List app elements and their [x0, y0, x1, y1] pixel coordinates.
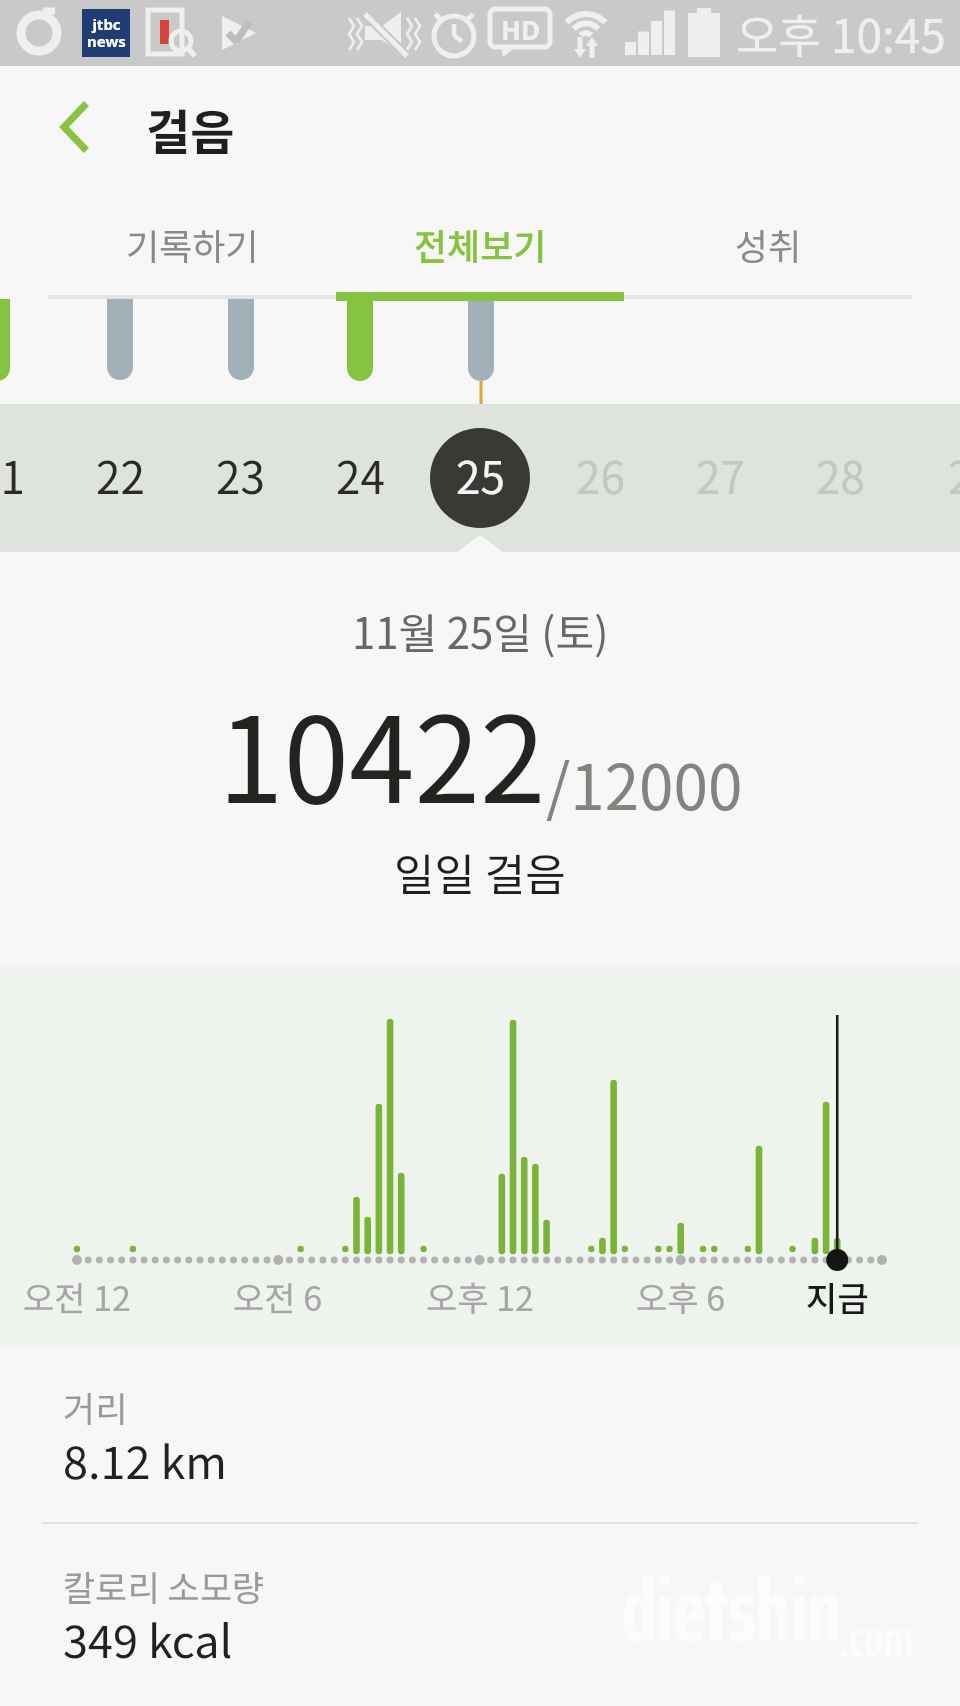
staticText: 오후 10:45	[736, 0, 946, 66]
staticText: 24	[336, 443, 385, 507]
staticText: 성취	[735, 218, 802, 270]
staticText: jtbc news	[87, 14, 126, 52]
staticText: HD	[501, 12, 540, 47]
button[interactable]: 2	[910, 428, 960, 528]
staticText: 21	[0, 443, 25, 507]
staticText: 11월 25일 (토)	[352, 600, 609, 661]
button[interactable]: 26	[550, 428, 650, 528]
staticText: 10422	[218, 666, 546, 837]
staticText: 28	[816, 443, 865, 507]
button[interactable]: 기록하기	[48, 188, 336, 298]
staticText: 지금	[806, 1272, 869, 1321]
button[interactable]: 칼로리 소모량	[0, 1524, 960, 1701]
staticText: 오전 12	[23, 1272, 131, 1321]
button[interactable]: 성취	[624, 188, 912, 298]
button[interactable]: 22	[70, 428, 170, 528]
button[interactable]: 21	[0, 428, 50, 528]
button[interactable]: 24	[310, 428, 410, 528]
staticText: /12000	[546, 738, 743, 828]
button[interactable]: 27	[670, 428, 770, 528]
staticText: 22	[96, 443, 145, 507]
staticText: 기록하기	[126, 218, 259, 270]
staticText: 일일 걸음	[394, 840, 566, 904]
button[interactable]: 25	[430, 428, 530, 528]
button[interactable]: 28	[790, 428, 890, 528]
staticText: 349 kcal	[63, 1606, 233, 1671]
staticText: 2	[948, 443, 960, 507]
staticText: 8.12 km	[63, 1427, 228, 1492]
button[interactable]: Back	[18, 73, 126, 181]
staticText: 26	[576, 443, 625, 507]
staticText: 25	[456, 443, 505, 507]
button[interactable]: 23	[190, 428, 290, 528]
staticText: 오전 6	[233, 1272, 323, 1321]
button[interactable]: 거리	[0, 1345, 960, 1522]
staticText: 거리	[63, 1381, 128, 1432]
staticText: 전체보기	[414, 218, 547, 270]
staticText: 걸음	[146, 94, 235, 164]
staticText: 23	[216, 443, 265, 507]
staticText: 27	[696, 443, 745, 507]
button[interactable]: 전체보기	[336, 188, 624, 298]
staticText: 오후 12	[426, 1272, 534, 1321]
staticText: 오후 6	[636, 1272, 726, 1321]
staticText: 칼로리 소모량	[63, 1560, 265, 1611]
